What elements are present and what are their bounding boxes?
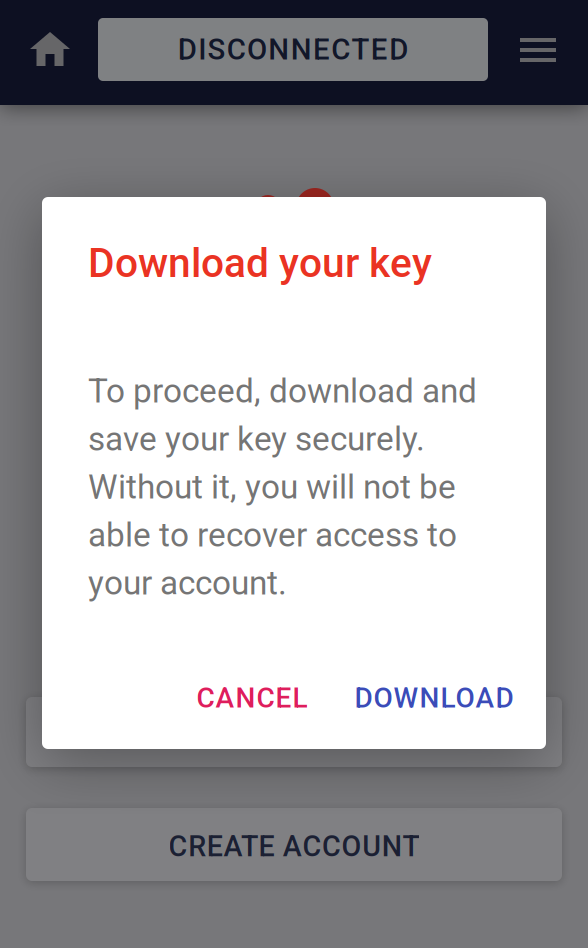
staticText: Without it, you will not be <box>88 467 456 507</box>
button[interactable]: Home <box>16 18 84 80</box>
staticText: CREATE ACCOUNT <box>169 830 419 863</box>
staticText: able to recover access to <box>88 515 457 555</box>
button[interactable]: Menu <box>506 24 570 76</box>
staticText: save your key securely. <box>88 419 425 459</box>
button[interactable]: CREATE ACCOUNT <box>26 808 562 881</box>
button[interactable]: DISCONNECTED <box>98 18 488 81</box>
button[interactable]: DOWNLOAD <box>336 670 532 726</box>
staticText: DISCONNECTED <box>178 32 408 67</box>
staticText: Download your key <box>88 239 432 287</box>
staticText: CANCEL <box>196 682 307 714</box>
staticText: DOWNLOAD <box>354 682 513 714</box>
staticText: your account. <box>88 563 287 603</box>
button[interactable]: CANCEL <box>177 670 327 726</box>
staticText: To proceed, download and <box>88 371 477 411</box>
